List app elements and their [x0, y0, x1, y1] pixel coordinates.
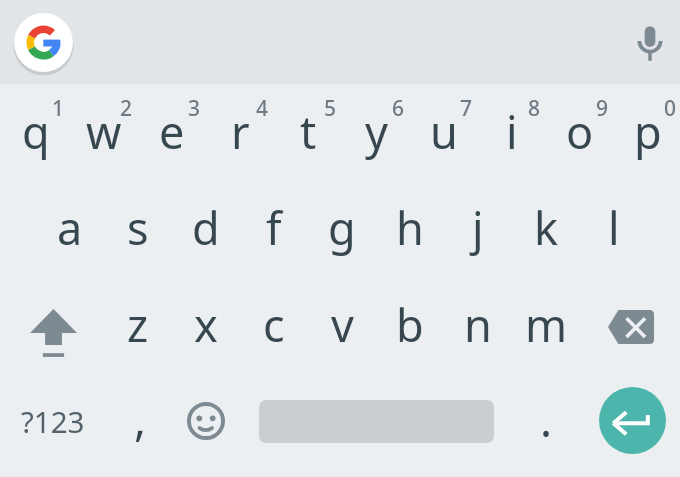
button[interactable]: m — [512, 277, 580, 371]
button[interactable]: g — [308, 180, 376, 274]
staticText: r — [231, 101, 250, 162]
button[interactable]: . — [512, 374, 580, 468]
staticText: f — [266, 197, 282, 258]
button[interactable]: ?123 — [2, 374, 104, 468]
button[interactable]: y — [342, 84, 410, 178]
staticText: 6 — [392, 94, 405, 123]
button[interactable]: f — [240, 180, 308, 274]
button[interactable]: c — [240, 277, 308, 371]
button[interactable]: q — [2, 84, 70, 178]
button[interactable]: a — [36, 180, 104, 274]
staticText: z — [127, 294, 149, 355]
button[interactable]: t — [274, 84, 342, 178]
staticText: 1 — [52, 94, 65, 123]
button[interactable]: b — [376, 277, 444, 371]
staticText: a — [57, 197, 83, 258]
staticText: 0 — [664, 94, 677, 123]
staticText: ?123 — [21, 401, 85, 441]
button[interactable]: j — [444, 180, 512, 274]
staticText: 4 — [256, 94, 269, 123]
button[interactable]: u — [410, 84, 478, 178]
button[interactable]: k — [512, 180, 580, 274]
button[interactable]: o — [546, 84, 614, 178]
staticText: u — [430, 101, 458, 162]
staticText: 3 — [188, 94, 201, 123]
staticText: d — [192, 197, 220, 258]
button[interactable]: s — [104, 180, 172, 274]
staticText: h — [396, 197, 424, 258]
button[interactable]: Backspace — [580, 277, 680, 371]
button[interactable]: Emoji — [172, 374, 240, 468]
staticText: t — [300, 101, 317, 162]
staticText: . — [540, 389, 553, 450]
staticText: m — [525, 294, 568, 355]
button[interactable]: e — [138, 84, 206, 178]
staticText: 8 — [528, 94, 541, 123]
button[interactable]: n — [444, 277, 512, 371]
staticText: 9 — [596, 94, 609, 123]
button[interactable]: Shift — [2, 277, 104, 371]
staticText: , — [134, 388, 147, 449]
staticText: l — [608, 197, 620, 258]
button[interactable]: r — [206, 84, 274, 178]
button[interactable]: x — [172, 277, 240, 371]
button[interactable]: d — [172, 180, 240, 274]
staticText: w — [86, 101, 122, 162]
staticText: c — [263, 294, 285, 355]
staticText: i — [506, 101, 518, 162]
staticText: 5 — [324, 94, 337, 123]
staticText: n — [464, 294, 492, 355]
button[interactable]: , — [104, 374, 172, 468]
staticText: 7 — [460, 94, 473, 123]
button[interactable]: w — [70, 84, 138, 178]
staticText: b — [396, 294, 424, 355]
button[interactable]: p — [614, 84, 680, 178]
staticText: y — [365, 101, 388, 162]
staticText: p — [634, 101, 662, 162]
button[interactable]: l — [580, 180, 648, 274]
staticText: 2 — [120, 94, 133, 123]
button[interactable]: Google search — [14, 13, 73, 72]
button[interactable]: Enter — [580, 374, 680, 468]
staticText: s — [127, 197, 149, 258]
staticText: q — [22, 101, 50, 162]
staticText: v — [331, 294, 354, 355]
button[interactable]: v — [308, 277, 376, 371]
button[interactable]: Space — [240, 374, 512, 468]
button[interactable]: h — [376, 180, 444, 274]
staticText: e — [159, 101, 185, 162]
button[interactable]: i — [478, 84, 546, 178]
button[interactable]: Voice input — [620, 14, 680, 74]
staticText: g — [328, 197, 356, 258]
staticText: k — [534, 197, 559, 258]
staticText: j — [472, 197, 484, 258]
staticText: o — [566, 101, 594, 162]
staticText: x — [194, 294, 218, 355]
button[interactable]: z — [104, 277, 172, 371]
